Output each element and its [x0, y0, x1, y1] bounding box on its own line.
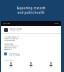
staticText: amet consectetur elit: [4, 38, 17, 40]
staticText: Ut enim ad minim: [4, 43, 13, 45]
staticText: quis nostrud exerci: [4, 45, 18, 47]
staticText: Topics: [54, 23, 59, 24]
staticText: ullamco laboris nisi: [4, 47, 16, 49]
button[interactable]: Help: [41, 62, 61, 68]
button[interactable]: Data: [21, 62, 41, 68]
staticText: Overview: [3, 23, 10, 24]
staticText: Supporting research: [16, 6, 45, 10]
staticText: aliquip ex ea: [4, 49, 12, 50]
staticText: Duis aute irure: [9, 52, 19, 54]
staticText: and public health: [17, 11, 44, 14]
staticText: sed do eiusmod: [4, 39, 15, 41]
staticText: Published today: [10, 30, 21, 32]
staticText: Data: [29, 66, 32, 68]
staticText: Research news: [10, 28, 22, 30]
staticText: Help: [49, 66, 52, 68]
button[interactable]: News: [1, 62, 21, 68]
staticText: dolor in voluptate: [9, 54, 20, 56]
staticText: Explore more: [4, 59, 14, 61]
staticText: News: [9, 66, 13, 68]
staticText: Lorem ipsum dolor sit: [4, 36, 18, 38]
